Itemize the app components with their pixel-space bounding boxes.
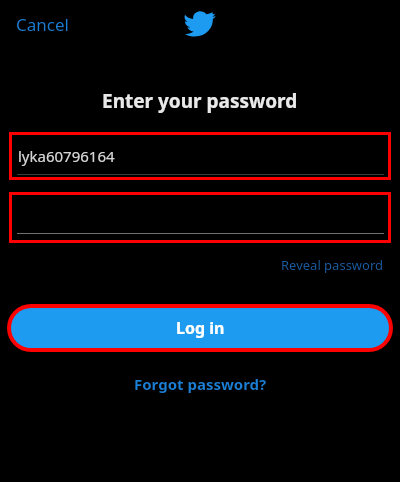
staticText: Forgot password? [134,374,267,394]
button[interactable] [9,192,391,243]
button[interactable]: lyka60796164 [9,132,391,180]
button[interactable]: Reveal password [279,254,386,276]
staticText: Reveal password [281,256,384,274]
staticText: Log in [176,317,225,339]
staticText: Enter your password [102,88,298,114]
other: Twitter [185,9,215,37]
button[interactable]: Cancel [8,7,77,42]
button[interactable]: Forgot password? [128,371,273,397]
staticText: lyka60796164 [18,146,115,166]
staticText: Cancel [16,13,69,36]
button[interactable]: Log in [11,308,389,348]
